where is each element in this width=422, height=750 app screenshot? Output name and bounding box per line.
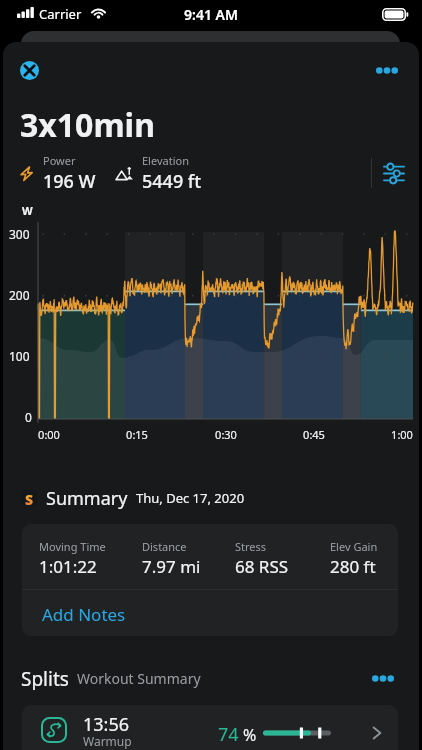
staticText: 196 W xyxy=(43,169,96,193)
staticText: 300 xyxy=(9,226,30,242)
staticText: 5449 ft xyxy=(142,169,202,193)
staticText: Summary xyxy=(46,486,128,510)
staticText: 68 RSS xyxy=(235,555,289,578)
button[interactable]: 13:56 xyxy=(22,705,398,750)
button[interactable]: Splits options xyxy=(364,666,402,690)
staticText: Add Notes xyxy=(42,603,126,626)
staticText: Distance xyxy=(142,539,187,554)
staticText: 100 xyxy=(9,348,30,364)
staticText: Workout Summary xyxy=(77,669,201,688)
button[interactable]: Close xyxy=(17,58,41,82)
staticText: Thu, Dec 17, 2020 xyxy=(136,489,245,507)
staticText: W xyxy=(22,203,33,218)
button[interactable]: More options xyxy=(368,57,406,83)
staticText: 9:41 AM xyxy=(0,5,422,24)
staticText: 7.97 mi xyxy=(142,555,201,578)
staticText: Warmup xyxy=(83,733,132,749)
staticText: 200 xyxy=(9,287,30,303)
staticText: 3x10min xyxy=(20,103,155,147)
staticText: 0:45 xyxy=(294,427,334,442)
staticText: Elev Gain xyxy=(330,539,378,554)
staticText: 0 xyxy=(25,409,32,425)
staticText: 74 xyxy=(218,722,239,747)
staticText: 1:01:22 xyxy=(39,555,97,578)
staticText: S xyxy=(25,490,34,506)
button[interactable]: Add Notes xyxy=(22,590,398,636)
staticText: 0:15 xyxy=(117,427,157,442)
staticText: Moving Time xyxy=(39,539,106,554)
staticText: 0:00 xyxy=(29,427,69,442)
staticText: Splits xyxy=(21,666,69,690)
staticText: 1:00 xyxy=(382,427,422,442)
staticText: % xyxy=(243,724,257,746)
button[interactable]: Workout settings xyxy=(372,153,416,193)
staticText: Elevation xyxy=(142,153,189,168)
staticText: 0:30 xyxy=(206,427,246,442)
staticText: 280 ft xyxy=(330,555,376,578)
staticText: Stress xyxy=(235,539,267,554)
staticText: Carrier xyxy=(39,5,82,23)
staticText: Power xyxy=(43,153,76,168)
staticText: 13:56 xyxy=(83,712,130,737)
